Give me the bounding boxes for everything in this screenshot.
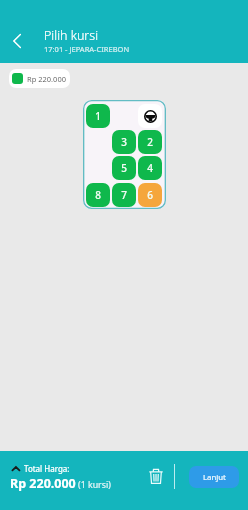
button[interactable]: Back: [4, 28, 30, 54]
button[interactable]: Total Harga:: [10, 463, 111, 492]
staticText: 4: [147, 161, 153, 175]
button[interactable]: 6: [138, 183, 162, 207]
staticText: 6: [147, 188, 153, 202]
staticText: Rp 220.000: [10, 475, 76, 492]
staticText: Lanjut: [203, 472, 226, 483]
other: Driver: [138, 104, 162, 128]
button[interactable]: 5: [112, 156, 136, 180]
staticText: (1 kursi): [78, 479, 111, 491]
staticText: 1: [95, 109, 101, 123]
staticText: 7: [121, 188, 127, 202]
staticText: 8: [95, 188, 101, 202]
button[interactable]: Rp 220.000: [9, 69, 70, 88]
staticText: 17:01 - JEPARA-CIREBON: [44, 44, 130, 54]
button[interactable]: 8: [86, 183, 110, 207]
staticText: 5: [121, 161, 127, 175]
staticText: 2: [147, 135, 153, 149]
staticText: Pilih kursi: [44, 27, 99, 44]
button[interactable]: 3: [112, 130, 136, 154]
button[interactable]: 1: [86, 104, 110, 128]
staticText: Rp 220.000: [27, 74, 66, 84]
button[interactable]: 7: [112, 183, 136, 207]
staticText: Total Harga:: [24, 463, 70, 474]
button[interactable]: Lanjut: [189, 466, 239, 488]
button[interactable]: 2: [138, 130, 162, 154]
button[interactable]: 4: [138, 156, 162, 180]
staticText: 3: [121, 135, 127, 149]
button[interactable]: Delete: [143, 463, 169, 489]
